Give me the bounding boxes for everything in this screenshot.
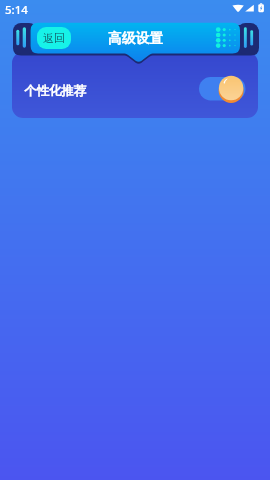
button[interactable]: 个性化推荐开关 xyxy=(198,75,245,106)
staticText: 返回 xyxy=(43,31,65,45)
staticText: 高级设置 xyxy=(108,30,164,47)
staticText: 个性化推荐 xyxy=(24,83,86,99)
button[interactable]: 返回 xyxy=(37,27,71,49)
button[interactable]: 个性化推荐 xyxy=(12,75,258,106)
staticText: 5:14 xyxy=(5,2,28,18)
